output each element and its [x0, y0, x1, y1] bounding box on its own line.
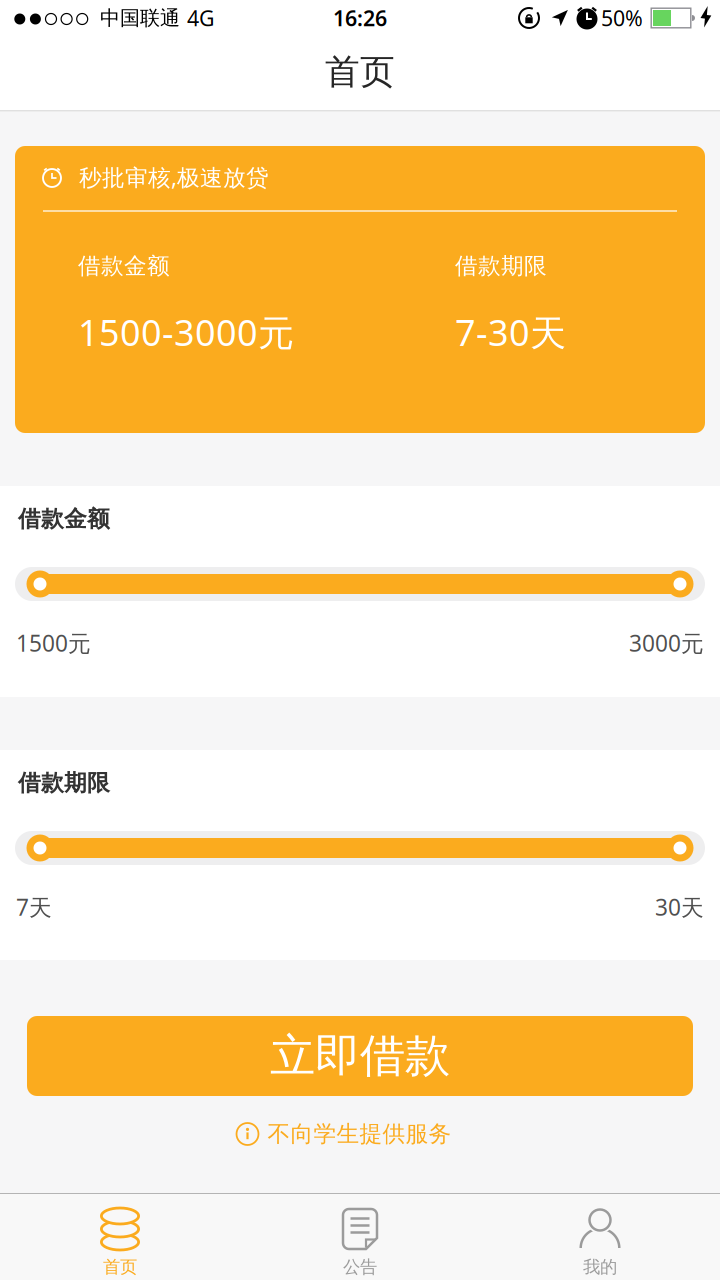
- staticText: 我的: [583, 1256, 617, 1278]
- staticText: 借款金额: [18, 505, 110, 533]
- staticText: 借款期限: [455, 252, 547, 280]
- button[interactable]: 我的: [480, 1194, 720, 1280]
- staticText: 4G: [187, 4, 215, 32]
- staticText: 30天: [655, 892, 704, 922]
- staticText: 1500元: [16, 628, 91, 658]
- button[interactable]: 公告: [240, 1194, 480, 1280]
- staticText: 7天: [16, 892, 52, 922]
- staticText: 50%: [601, 4, 643, 32]
- staticText: 秒批审核,极速放贷: [79, 162, 269, 192]
- staticText: 1500-3000元: [78, 308, 294, 356]
- staticText: 立即借款: [270, 1028, 450, 1084]
- staticText: 首页: [325, 51, 395, 93]
- staticText: 中国联通: [100, 6, 180, 30]
- staticText: 不向学生提供服务: [267, 1120, 451, 1148]
- staticText: 公告: [343, 1256, 377, 1278]
- button[interactable]: 首页: [0, 1194, 240, 1280]
- staticText: 借款金额: [78, 252, 170, 280]
- button[interactable]: 立即借款: [27, 1016, 693, 1096]
- button[interactable]: 不向学生提供服务: [236, 1120, 451, 1148]
- staticText: 借款期限: [18, 769, 110, 797]
- staticText: 首页: [103, 1256, 137, 1278]
- staticText: 16:26: [333, 4, 387, 32]
- staticText: 3000元: [629, 628, 704, 658]
- staticText: 7-30天: [455, 308, 566, 356]
